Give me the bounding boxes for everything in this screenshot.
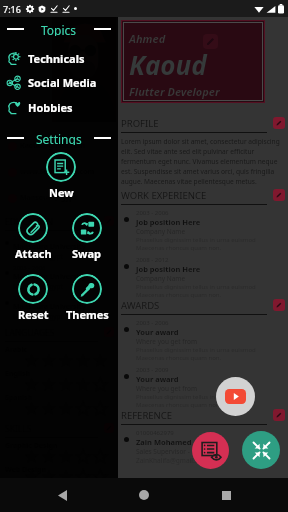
staticText: 2003 - 2009 (136, 366, 169, 374)
staticText: Mansoura,Egypt (20, 193, 77, 203)
button[interactable]: Home (124, 478, 164, 512)
staticText: 01000462979 (136, 429, 174, 437)
staticText: 2003 - 2006 (136, 319, 169, 327)
staticText: Job position Here (136, 217, 201, 227)
staticText: Mansoura,Egypt (13, 252, 63, 261)
staticText: EDUCATION (5, 216, 54, 228)
button[interactable]: www.Something.com (5, 165, 114, 179)
staticText: Lorem ipsum dolor sit amet, consectetur … (121, 137, 285, 186)
staticText: Mansoura,Egypt (13, 312, 63, 321)
staticText: 2003 - 2006 (136, 209, 169, 217)
staticText: Job position Here (136, 264, 201, 274)
staticText: 2003 - 2006 (13, 294, 46, 302)
button[interactable]: Back (42, 478, 82, 512)
button[interactable]: Swap (57, 213, 117, 261)
staticText: Flutter Developer (129, 84, 220, 99)
button[interactable]: Social Media (0, 70, 118, 94)
staticText: Swap (72, 246, 102, 261)
staticText: Topics (41, 22, 77, 36)
button[interactable]: Watch video (216, 377, 255, 416)
staticText: Hobbies (28, 100, 73, 115)
button[interactable]: Edit AWARDS (273, 299, 285, 311)
button[interactable]: Collapse (242, 431, 280, 469)
staticText: Themes (66, 307, 109, 322)
staticText: Reset (18, 307, 49, 322)
staticText: 7:16 (3, 3, 21, 15)
staticText: Where you get from (136, 337, 198, 346)
staticText: ZainKhalifa@gmail.c (136, 456, 198, 465)
staticText: Sales Supervisor - E (136, 447, 196, 456)
staticText: New (49, 185, 74, 200)
button[interactable]: Edit PROFILE (273, 117, 285, 129)
button[interactable]: New (31, 152, 91, 200)
staticText: www.Something.com (20, 167, 95, 177)
staticText: AWARDS (121, 299, 160, 312)
button[interactable]: Edit header (203, 34, 218, 49)
staticText: Where you get from (136, 384, 198, 393)
button[interactable]: Hobbies (0, 95, 118, 119)
staticText: 2008 - 2012 (136, 256, 169, 264)
staticText: Mansoura University (13, 242, 86, 252)
staticText: Kaoud (129, 47, 207, 82)
staticText: PROFILE (121, 117, 159, 130)
staticText: Social Media (28, 75, 97, 90)
staticText: Your award (136, 374, 179, 384)
staticText: Company Name (136, 274, 186, 283)
button[interactable]: Edit REFERENCE (273, 409, 285, 421)
staticText: Phasellus dignissim tellus in urna euism… (136, 393, 285, 401)
button[interactable]: Recent apps (206, 478, 246, 512)
staticText: Technicals (28, 51, 85, 66)
staticText: 2003 - 2006 (13, 234, 46, 242)
staticText: Your award (136, 327, 179, 337)
staticText: Zain Mohamed (136, 437, 192, 447)
staticText: Maecenas rhoncus quam non. (136, 401, 222, 409)
staticText: Mansoura University (13, 302, 86, 312)
staticText: Mansoura,Egypt (13, 282, 63, 291)
button[interactable]: Attach (3, 213, 63, 261)
button[interactable]: Reset (3, 274, 63, 322)
staticText: Kaoud@gmail.com (20, 141, 85, 151)
button[interactable]: Mansoura,Egypt (5, 191, 114, 205)
staticText: Ahmed (129, 31, 166, 46)
staticText: Company Name (136, 227, 186, 236)
staticText: REFERENCE (121, 409, 173, 422)
staticText: Attach (15, 246, 52, 261)
button[interactable]: Edit WORK EXPERIENCE (273, 189, 285, 201)
button[interactable]: Technicals (0, 46, 118, 70)
button[interactable]: Kaoud@gmail.com (5, 139, 114, 153)
staticText: WORK EXPERIENCE (121, 189, 207, 202)
button[interactable]: Themes (57, 274, 117, 322)
staticText: Mansoura University (13, 272, 86, 282)
button[interactable]: Preview resume (192, 432, 229, 469)
staticText: Settings (36, 131, 82, 145)
